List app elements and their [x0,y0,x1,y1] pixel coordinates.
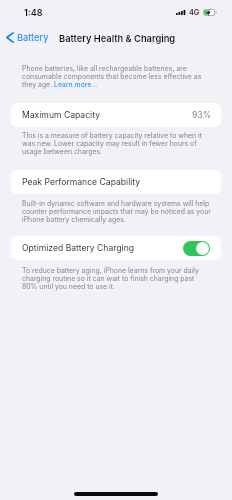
staticText: Optimized Battery Charging [22,243,135,253]
staticText: Phone batteries, like all rechargeable b… [22,65,211,89]
button[interactable]: Optimized Battery Charging [183,241,210,256]
staticText: 1:48 [24,8,43,18]
staticText: 4G [189,9,200,17]
staticText: Battery Health & Charging [59,34,176,44]
staticText: Peak Performance Capability [22,177,141,187]
staticText: Maximum Capacity [22,110,100,120]
staticText: Battery [17,33,49,43]
button[interactable]: Back to Battery [4,30,49,45]
staticText: This is a measure of battery capacity re… [22,132,211,156]
staticText: Built-in dynamic software and hardware s… [22,200,211,224]
button[interactable]: Peak Performance Capability [11,170,221,194]
button[interactable]: Maximum Capacity [11,103,221,127]
button[interactable]: Optimized Battery Charging [11,236,221,260]
staticText: 93% [192,110,212,120]
staticText: To reduce battery aging, iPhone learns f… [22,267,211,291]
